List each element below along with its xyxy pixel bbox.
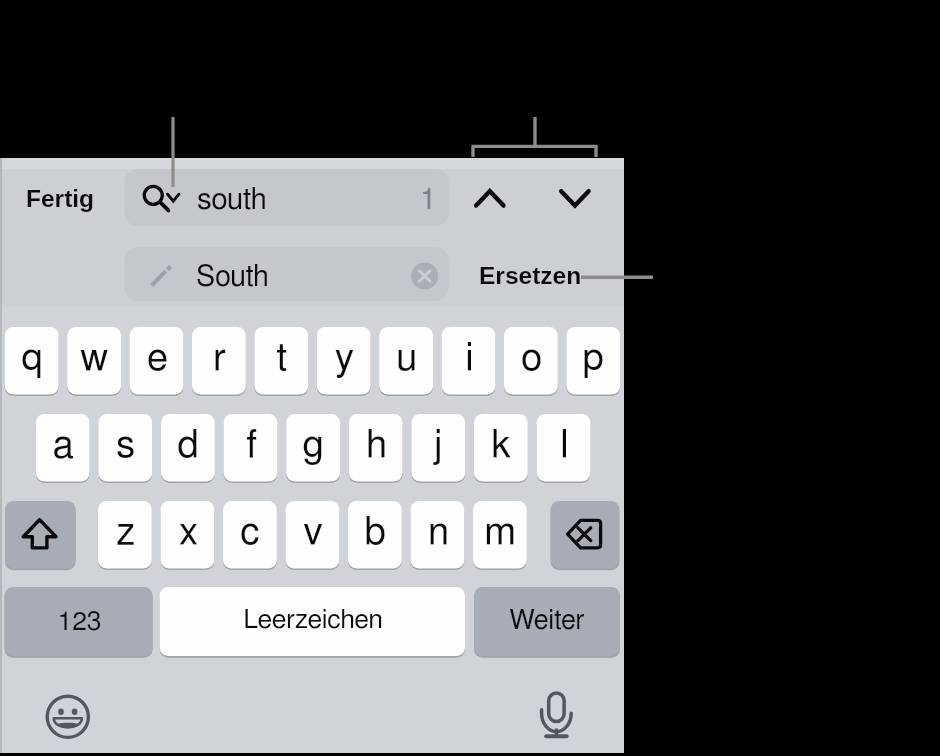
button[interactable]: Key s [98, 414, 152, 481]
staticText: Fertig [26, 185, 95, 212]
staticText: l [560, 426, 569, 464]
staticText: q [21, 339, 43, 377]
staticText: n [428, 513, 449, 551]
button[interactable]: Key i [442, 327, 496, 394]
button[interactable]: Key q [5, 327, 59, 394]
staticText: c [240, 513, 260, 551]
staticText: Ersetzen [479, 262, 582, 289]
button[interactable]: Key k [474, 414, 528, 481]
staticText: t [276, 339, 287, 377]
staticText: u [396, 339, 417, 377]
button[interactable]: Key b [348, 501, 402, 568]
button[interactable]: Key n [411, 501, 465, 568]
button[interactable]: Next result [551, 176, 599, 220]
staticText: g [302, 426, 324, 464]
staticText: 1 [420, 185, 437, 215]
button[interactable]: Key g [286, 414, 340, 481]
button[interactable]: Key c [223, 501, 277, 568]
button[interactable]: Next [474, 587, 620, 656]
button[interactable]: Search field [125, 169, 449, 226]
button[interactable]: Key e [130, 327, 184, 394]
button[interactable]: Delete [551, 501, 620, 569]
button[interactable]: Key u [379, 327, 433, 394]
staticText: m [484, 513, 516, 551]
staticText: h [366, 426, 387, 464]
button[interactable]: Replace field [125, 247, 449, 301]
button[interactable]: Key l [537, 414, 591, 481]
staticText: e [147, 339, 168, 377]
button[interactable]: Key f [224, 414, 278, 481]
button[interactable]: Key a [36, 414, 90, 481]
staticText: s [116, 426, 135, 464]
staticText: b [364, 513, 386, 551]
button[interactable]: Key t [254, 327, 308, 394]
button[interactable]: Key j [411, 414, 465, 481]
staticText: j [433, 426, 443, 464]
staticText: v [303, 513, 323, 551]
staticText: k [491, 426, 511, 464]
staticText: w [80, 339, 108, 377]
button[interactable]: Key p [566, 327, 620, 394]
staticText: p [582, 339, 604, 377]
button[interactable]: Space [160, 587, 465, 656]
button[interactable]: Previous result [466, 176, 514, 220]
button[interactable]: Shift [5, 501, 76, 569]
button[interactable]: Key z [98, 501, 152, 568]
button[interactable]: Key x [161, 501, 215, 568]
button[interactable]: Fertig [18, 178, 100, 218]
staticText: o [521, 339, 542, 377]
button[interactable]: Key r [192, 327, 246, 394]
staticText: i [465, 339, 474, 377]
staticText: 123 [57, 609, 102, 636]
staticText: Weiter [509, 607, 585, 634]
button[interactable]: Emoji [40, 688, 98, 746]
button[interactable]: Key h [349, 414, 403, 481]
button[interactable]: Key m [473, 501, 527, 568]
button[interactable]: Key d [161, 414, 215, 481]
staticText: x [179, 513, 198, 551]
button[interactable]: Ersetzen [474, 258, 582, 296]
staticText: z [116, 513, 135, 551]
staticText: South [196, 263, 269, 292]
button[interactable]: Dictation [528, 686, 586, 744]
staticText: d [177, 426, 199, 464]
staticText: y [335, 339, 354, 377]
staticText: Leerzeichen [243, 607, 383, 634]
staticText: r [213, 339, 226, 377]
button[interactable]: Key o [504, 327, 558, 394]
button[interactable]: Numbers [5, 587, 153, 656]
staticText: a [53, 426, 74, 464]
staticText: f [246, 426, 257, 464]
staticText: south [197, 185, 267, 215]
button[interactable]: Key v [286, 501, 340, 568]
button[interactable]: Key w [67, 327, 121, 394]
button[interactable]: Key y [317, 327, 371, 394]
